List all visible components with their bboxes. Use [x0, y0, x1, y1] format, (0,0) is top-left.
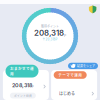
- button[interactable]: 結果をシェア: [68, 63, 98, 69]
- staticText: P: [64, 34, 66, 38]
- staticText: 208,318: [34, 28, 64, 38]
- staticText: P: [32, 85, 34, 89]
- staticText: テーマで運用: [58, 72, 82, 78]
- staticText: 結果をシェア: [77, 64, 95, 68]
- staticText: ポイント投資: [14, 93, 32, 98]
- button[interactable]: おまかせで運用: [3, 70, 49, 100]
- button[interactable]: テーマで運用: [51, 70, 97, 100]
- staticText: 獲得ポイント: [41, 24, 59, 28]
- staticText: はじめる: [59, 91, 75, 96]
- staticText: おまかせで運用: [10, 66, 34, 76]
- staticText: 208,318: [12, 82, 32, 89]
- button[interactable]: Beginner badge: [89, 5, 96, 14]
- staticText: ↑ 20,318P: [42, 38, 57, 41]
